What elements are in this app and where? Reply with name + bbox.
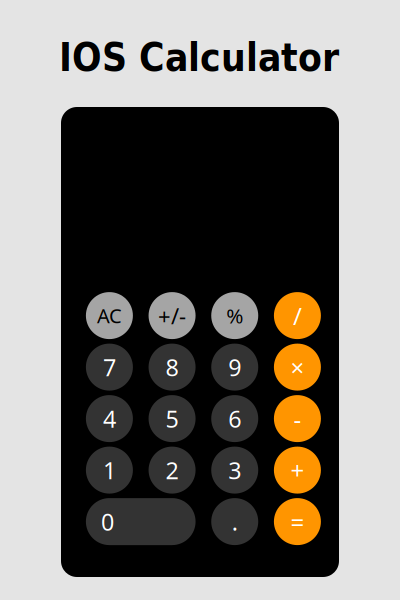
button[interactable]: + (274, 447, 321, 494)
staticText: 9 (228, 351, 241, 383)
button[interactable]: 1 (86, 447, 133, 494)
button[interactable]: - (274, 395, 321, 442)
button[interactable]: 8 (149, 344, 196, 391)
staticText: / (293, 299, 302, 332)
staticText: % (226, 301, 243, 330)
button[interactable]: 4 (86, 395, 133, 442)
button[interactable]: / (274, 292, 321, 339)
staticText: - (293, 402, 301, 435)
staticText: 1 (103, 454, 116, 486)
staticText: 7 (103, 351, 116, 383)
staticText: . (232, 506, 238, 537)
button[interactable]: 6 (211, 395, 258, 442)
staticText: = (290, 505, 304, 538)
staticText: 6 (228, 403, 241, 434)
button[interactable]: AC (86, 292, 133, 339)
button[interactable]: 5 (149, 395, 196, 442)
button[interactable]: = (274, 498, 321, 545)
button[interactable]: . (211, 498, 258, 545)
staticText: AC (97, 302, 122, 329)
button[interactable]: +/- (149, 292, 196, 339)
staticText: 8 (166, 351, 179, 383)
staticText: +/- (158, 301, 186, 331)
staticText: 5 (166, 403, 179, 434)
staticText: 4 (103, 403, 116, 434)
button[interactable]: × (274, 344, 321, 391)
button[interactable]: 2 (149, 447, 196, 494)
staticText: 3 (228, 454, 241, 486)
staticText: 0 (101, 506, 114, 537)
button[interactable]: 3 (211, 447, 258, 494)
staticText: IOS Calculator (59, 35, 339, 80)
button[interactable]: 9 (211, 344, 258, 391)
staticText: × (290, 351, 304, 383)
staticText: 2 (166, 454, 179, 486)
button[interactable]: % (211, 292, 258, 339)
staticText: + (290, 454, 304, 486)
button[interactable]: 7 (86, 344, 133, 391)
button[interactable]: 0 (86, 498, 196, 545)
